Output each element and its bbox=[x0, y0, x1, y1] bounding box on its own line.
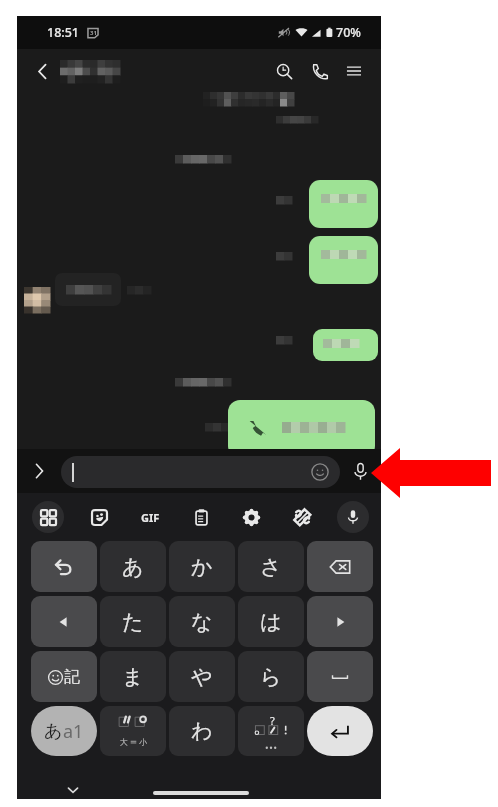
button[interactable]: さ bbox=[238, 541, 304, 592]
button[interactable]: Settings bbox=[235, 501, 267, 533]
button[interactable] bbox=[228, 400, 375, 458]
button[interactable]: ま bbox=[100, 651, 166, 702]
button[interactable] bbox=[309, 180, 378, 228]
button[interactable]: Expand actions bbox=[22, 454, 56, 488]
button[interactable]: や bbox=[169, 651, 235, 702]
button[interactable]: あ bbox=[31, 706, 97, 756]
staticText: わ bbox=[191, 718, 213, 744]
staticText: な bbox=[191, 609, 213, 635]
button[interactable]: GIF bbox=[134, 501, 166, 533]
button[interactable]: Apps bbox=[32, 501, 64, 533]
staticText: さ bbox=[260, 554, 282, 580]
staticText: a1 bbox=[63, 719, 84, 744]
button[interactable]: た bbox=[100, 596, 166, 647]
staticText: ? bbox=[270, 713, 275, 728]
button[interactable]: Call bbox=[304, 56, 334, 86]
button[interactable]: Voice typing bbox=[337, 501, 369, 533]
button[interactable] bbox=[61, 456, 340, 488]
button[interactable]: 記 bbox=[31, 651, 97, 702]
staticText: ら bbox=[260, 664, 282, 690]
button[interactable]: ら bbox=[238, 651, 304, 702]
button[interactable]: Cursor right bbox=[307, 596, 373, 647]
staticText: や bbox=[191, 664, 213, 690]
staticText: ま bbox=[122, 664, 144, 690]
button[interactable]: Menu bbox=[339, 56, 369, 86]
button[interactable]: Handwriting bbox=[286, 501, 318, 533]
button[interactable]: Punctuation bbox=[238, 706, 304, 756]
button[interactable]: わ bbox=[169, 706, 235, 756]
button[interactable]: Hide keyboard bbox=[62, 779, 84, 801]
staticText: あ bbox=[122, 554, 144, 580]
button[interactable] bbox=[309, 236, 378, 284]
button[interactable]: Back bbox=[25, 54, 59, 88]
staticText: 70% bbox=[336, 24, 361, 41]
staticText: は bbox=[260, 609, 282, 635]
button[interactable]: Search bbox=[269, 56, 299, 86]
button[interactable]: Clipboard bbox=[185, 501, 217, 533]
staticText: 31 bbox=[90, 29, 97, 37]
staticText: た bbox=[122, 609, 144, 635]
staticText: あ bbox=[44, 720, 63, 743]
staticText: か bbox=[191, 554, 213, 580]
staticText: 小 bbox=[139, 737, 147, 747]
button[interactable]: Dakuten / small kana bbox=[100, 706, 166, 756]
staticText: 記 bbox=[64, 667, 80, 687]
button[interactable]: Cursor left bbox=[31, 596, 97, 647]
staticText: 18:51 bbox=[47, 24, 80, 41]
button[interactable]: Enter bbox=[307, 706, 373, 756]
button[interactable]: は bbox=[238, 596, 304, 647]
button[interactable]: Space bbox=[307, 651, 373, 702]
button[interactable]: な bbox=[169, 596, 235, 647]
button[interactable]: あ bbox=[100, 541, 166, 592]
button[interactable] bbox=[55, 273, 121, 306]
button[interactable] bbox=[313, 329, 378, 361]
button[interactable]: Undo bbox=[31, 541, 97, 592]
staticText: 大 bbox=[120, 737, 128, 747]
button[interactable]: Stickers bbox=[83, 501, 115, 533]
button[interactable]: Backspace bbox=[307, 541, 373, 592]
staticText: GIF bbox=[141, 510, 160, 525]
button[interactable]: Voice input bbox=[343, 454, 377, 488]
button[interactable]: か bbox=[169, 541, 235, 592]
